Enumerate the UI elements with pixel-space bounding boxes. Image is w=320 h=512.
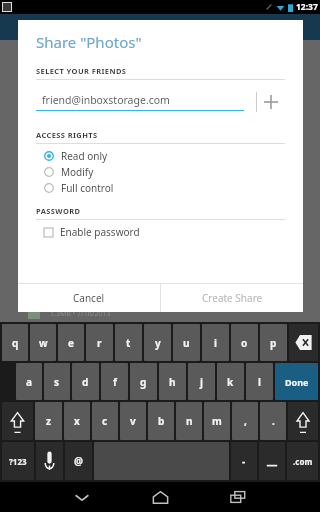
- staticText: friend@inboxstorage.com: [42, 93, 170, 107]
- staticText: d: [82, 375, 89, 389]
- button[interactable]: Shift: [288, 402, 318, 440]
- staticText: g: [140, 375, 147, 389]
- button[interactable]: m: [204, 402, 230, 440]
- staticText: w: [39, 336, 48, 350]
- staticText: q: [12, 336, 19, 350]
- staticText: f: [113, 375, 117, 389]
- button[interactable]: j: [188, 363, 215, 400]
- button[interactable]: Add friend: [257, 88, 285, 116]
- staticText: .com: [293, 456, 313, 467]
- button[interactable]: ?123: [2, 442, 34, 480]
- button[interactable]: Done: [275, 363, 318, 400]
- staticText: ACCESS RIGHTS: [36, 130, 98, 140]
- button[interactable]: o: [231, 324, 258, 361]
- staticText: Read only: [61, 149, 108, 163]
- button[interactable]: ,: [232, 402, 258, 440]
- button[interactable]: Create Share: [161, 284, 303, 312]
- staticText: Cancel: [73, 291, 105, 305]
- button[interactable]: u: [173, 324, 200, 361]
- staticText: m: [212, 414, 222, 428]
- button[interactable]: s: [44, 363, 70, 400]
- button[interactable]: Enable password: [36, 224, 285, 240]
- button[interactable]: Cancel: [18, 284, 160, 312]
- button[interactable]: h: [159, 363, 186, 400]
- staticText: b: [158, 414, 165, 428]
- staticText: y: [155, 336, 161, 350]
- button[interactable]: n: [176, 402, 202, 440]
- staticText: 12:37: [296, 1, 318, 13]
- button[interactable]: l: [246, 363, 273, 400]
- staticText: l: [258, 375, 261, 389]
- button[interactable]: t: [115, 324, 142, 361]
- staticText: @: [74, 454, 83, 468]
- staticText: c: [102, 414, 108, 428]
- button[interactable]: y: [144, 324, 171, 361]
- button[interactable]: w: [30, 324, 56, 361]
- button[interactable]: Full control: [36, 180, 285, 196]
- staticText: p: [270, 336, 277, 350]
- button[interactable]: b: [148, 402, 174, 440]
- staticText: e: [68, 336, 74, 350]
- staticText: PASSWORD: [36, 206, 81, 216]
- staticText: .: [272, 414, 275, 428]
- staticText: n: [186, 414, 193, 428]
- button[interactable]: a: [16, 363, 42, 400]
- staticText: r: [97, 336, 102, 350]
- staticText: j: [200, 375, 203, 389]
- button[interactable]: Modify: [36, 164, 285, 180]
- button[interactable]: Voice input: [36, 442, 63, 480]
- button[interactable]: x: [64, 402, 90, 440]
- button[interactable]: k: [217, 363, 244, 400]
- button[interactable]: g: [130, 363, 157, 400]
- button[interactable]: Hide keyboard: [65, 482, 99, 512]
- staticText: s: [54, 375, 60, 389]
- staticText: a: [26, 375, 32, 389]
- button[interactable]: e: [58, 324, 84, 361]
- staticText: Enable password: [60, 225, 140, 239]
- staticText: -: [242, 454, 246, 468]
- button[interactable]: d: [72, 363, 99, 400]
- staticText: ?123: [9, 456, 27, 467]
- button[interactable]: v: [120, 402, 146, 440]
- staticText: k: [227, 375, 234, 389]
- staticText: t: [126, 336, 131, 350]
- button[interactable]: Shift: [2, 402, 33, 440]
- button[interactable]: q: [2, 324, 28, 361]
- staticText: x: [74, 414, 80, 428]
- staticText: 1.3MB • 7/16/2013: [50, 309, 111, 319]
- staticText: Modify: [61, 165, 94, 179]
- button[interactable]: p: [260, 324, 287, 361]
- button[interactable]: @: [65, 442, 92, 480]
- button[interactable]: Backspace: [289, 324, 318, 361]
- staticText: h: [169, 375, 176, 389]
- button[interactable]: -: [231, 442, 257, 480]
- button[interactable]: Home: [143, 482, 177, 512]
- staticText: Done: [285, 376, 309, 388]
- staticText: ,: [244, 414, 247, 428]
- button[interactable]: .: [260, 402, 286, 440]
- button[interactable]: Read only: [36, 148, 285, 164]
- staticText: SELECT YOUR FRIENDS: [36, 66, 127, 76]
- staticText: Full control: [61, 181, 114, 195]
- staticText: Create Share: [202, 291, 263, 305]
- button[interactable]: c: [92, 402, 118, 440]
- staticText: v: [130, 414, 136, 428]
- button[interactable]: Underscore: [259, 442, 285, 480]
- button[interactable]: .com: [287, 442, 318, 480]
- button[interactable]: f: [101, 363, 128, 400]
- staticText: u: [183, 336, 190, 350]
- button[interactable]: r: [86, 324, 113, 361]
- button[interactable]: Recent apps: [221, 482, 255, 512]
- staticText: Share "Photos": [36, 32, 142, 52]
- staticText: o: [241, 336, 248, 350]
- button[interactable]: z: [35, 402, 62, 440]
- staticText: z: [46, 414, 51, 428]
- button[interactable]: i: [202, 324, 229, 361]
- staticText: i: [214, 336, 217, 350]
